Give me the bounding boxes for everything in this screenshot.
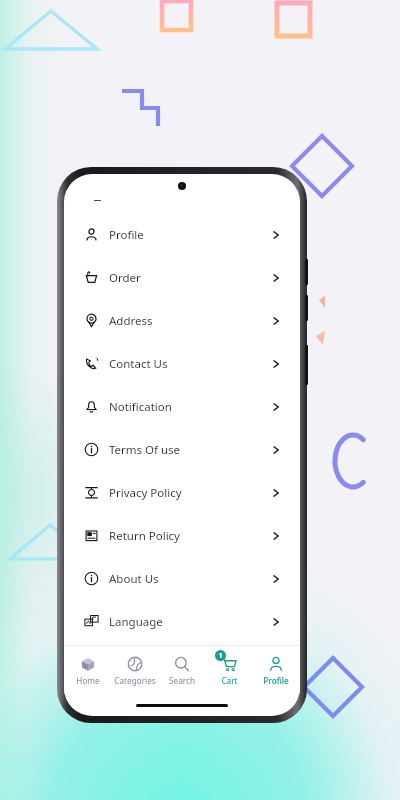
button[interactable]: Categories: [112, 651, 158, 689]
button[interactable]: Home: [65, 651, 111, 689]
button[interactable]: Search: [159, 651, 205, 689]
staticText: Notification: [109, 399, 172, 415]
staticText: Profile: [263, 675, 289, 686]
button[interactable]: Return Policy: [64, 514, 300, 557]
staticText: About Us: [109, 571, 159, 587]
button[interactable]: Privacy Policy: [64, 471, 300, 514]
staticText: Address: [109, 313, 153, 329]
button[interactable]: Order: [64, 256, 300, 299]
staticText: Return Policy: [109, 528, 180, 544]
staticText: Order: [109, 270, 141, 286]
staticText: Language: [109, 614, 163, 630]
button[interactable]: Address: [64, 299, 300, 342]
staticText: 1: [218, 651, 223, 661]
staticText: Profile: [109, 227, 144, 243]
staticText: Home: [76, 675, 100, 686]
staticText: Categories: [114, 675, 156, 686]
button[interactable]: Language: [64, 600, 300, 643]
staticText: Contact Us: [109, 356, 168, 372]
staticText: Cart: [221, 675, 238, 686]
staticText: Privacy Policy: [109, 485, 182, 501]
button[interactable]: Notification: [64, 385, 300, 428]
button[interactable]: Profile: [253, 651, 299, 689]
button[interactable]: Terms Of use: [64, 428, 300, 471]
staticText: Terms Of use: [109, 442, 181, 458]
button[interactable]: 1: [206, 651, 252, 689]
button[interactable]: About Us: [64, 557, 300, 600]
button[interactable]: Contact Us: [64, 342, 300, 385]
staticText: Search: [169, 675, 195, 686]
button[interactable]: Profile: [64, 213, 300, 256]
